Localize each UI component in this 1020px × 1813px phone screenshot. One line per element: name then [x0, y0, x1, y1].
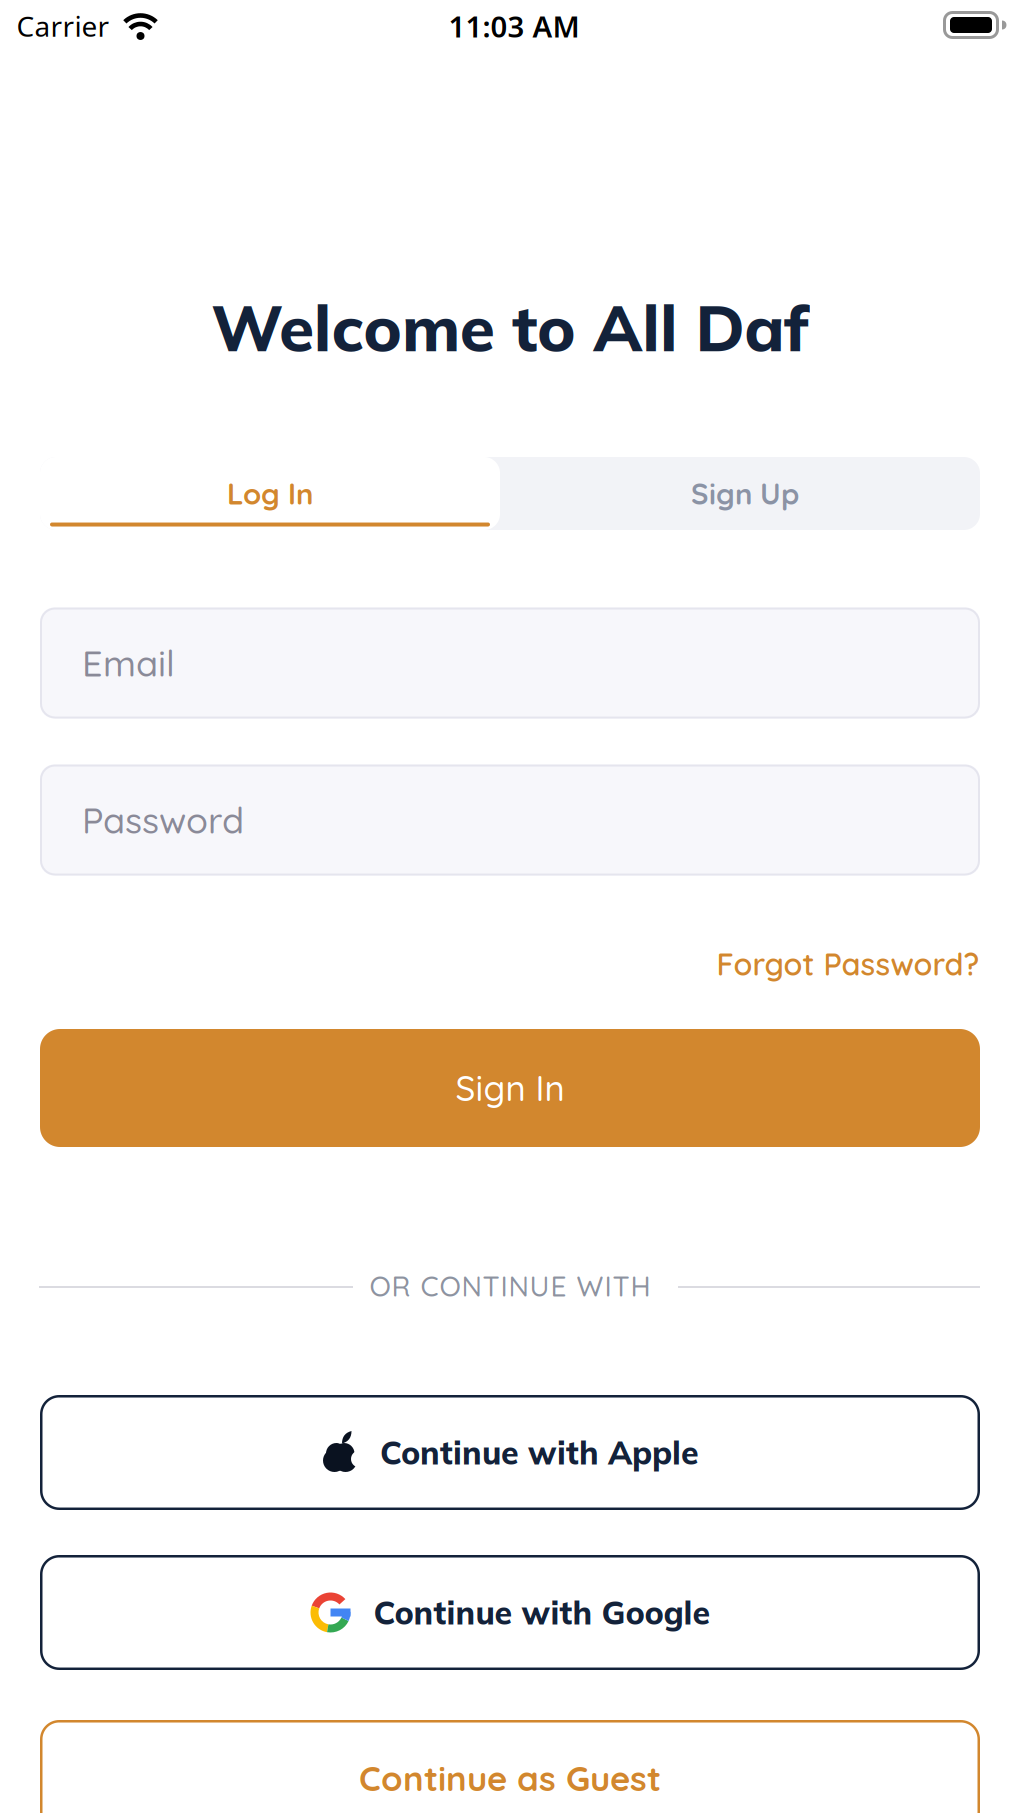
- button[interactable]: Forgot Password?: [716, 945, 979, 983]
- staticText: Forgot Password?: [716, 945, 979, 983]
- button[interactable]: Continue as Guest: [40, 1720, 980, 1813]
- button[interactable]: Continue with Apple: [40, 1395, 980, 1510]
- staticText: Continue with Google: [373, 1592, 710, 1633]
- button[interactable]: Continue with Google: [40, 1555, 980, 1670]
- staticText: 11:03 AM: [448, 6, 579, 45]
- staticText: Sign Up: [691, 475, 799, 512]
- staticText: Carrier: [16, 7, 109, 45]
- staticText: Sign In: [455, 1066, 564, 1110]
- button[interactable]: Log In: [40, 457, 500, 530]
- button[interactable]: Sign Up: [505, 457, 985, 530]
- staticText: Log In: [227, 475, 313, 512]
- staticText: Continue with Apple: [380, 1432, 699, 1473]
- staticText: Password: [82, 797, 244, 842]
- staticText: Email: [82, 640, 175, 685]
- staticText: Welcome to All Daf: [211, 287, 809, 367]
- staticText: OR CONTINUE WITH: [369, 1268, 650, 1303]
- button[interactable]: Sign In: [40, 1029, 980, 1147]
- staticText: Continue as Guest: [359, 1756, 661, 1800]
